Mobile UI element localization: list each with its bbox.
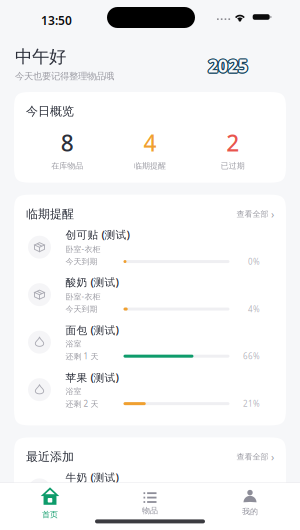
staticText: 查看全部 [236,209,268,219]
staticText: 21% [243,398,260,409]
button[interactable]: 查看全部 [236,450,274,464]
staticText: 面包 (测试) [65,323,118,337]
staticText: 我的 [242,507,258,516]
staticText: 已过期 [221,161,245,171]
staticText: 首页 [42,510,58,519]
staticText: 2025 [207,54,247,78]
button[interactable]: 我的 [200,490,300,516]
staticText: 2 [226,128,239,158]
button[interactable]: 苹果 (测试) [26,366,274,413]
staticText: 13:50 [41,12,72,28]
staticText: 浴室 [65,386,81,396]
staticText: 今天到期 [65,304,97,314]
staticText: 酸奶 (测试) [65,275,118,289]
button[interactable]: 首页 [0,487,100,519]
staticText: 2025 [208,54,248,78]
staticText: 66% [243,351,260,361]
staticText: 牛奶 (测试) [65,470,118,484]
button[interactable]: 面包 (测试) [26,318,274,366]
staticText: › [271,207,274,221]
button[interactable]: 查看全部 [236,207,274,221]
staticText: 浴室 [65,339,81,349]
staticText: 2025 [207,55,247,78]
staticText: 4% [248,304,260,314]
staticText: 今日概览 [26,104,74,119]
button[interactable]: 酸奶 (测试) [26,271,274,318]
staticText: 创可贴 (测试) [65,227,129,242]
staticText: 还剩 1 天 [65,351,98,361]
staticText: 最近添加 [26,449,74,464]
staticText: 2025 [209,54,249,78]
staticText: 2025 [208,53,248,76]
staticText: 2025 [208,55,248,79]
staticText: 苹果 (测试) [65,370,118,384]
staticText: 2025 [207,53,247,77]
staticText: 中午好 [15,46,66,67]
staticText: › [271,450,274,464]
staticText: 在库物品 [51,161,83,171]
staticText: 卧室-衣柜 [65,244,100,254]
staticText: 今天也要记得整理物品哦 [15,70,114,82]
staticText: 0% [248,256,260,267]
staticText: 还剩 2 天 [65,398,98,409]
staticText: 8 [61,128,74,158]
staticText: 2025 [209,53,249,77]
staticText: 查看全部 [236,452,268,462]
staticText: 卧室-衣柜 [65,291,100,302]
staticText: 今天到期 [65,257,97,266]
staticText: 2025 [209,55,249,78]
staticText: 临期提醒 [134,161,166,171]
staticText: 物品 [142,506,158,515]
button[interactable]: 牛奶 (测试) [26,466,274,514]
staticText: 4 [143,128,156,158]
button[interactable]: 创可贴 (测试) [26,223,274,271]
staticText: 临期提醒 [26,207,74,221]
button[interactable]: 物品 [100,491,200,515]
